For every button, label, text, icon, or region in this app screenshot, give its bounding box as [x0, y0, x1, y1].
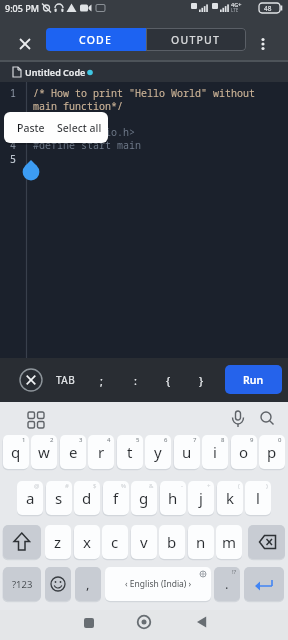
button[interactable]: Paste	[17, 112, 45, 143]
button[interactable]	[45, 567, 71, 601]
staticText: x	[83, 532, 91, 552]
button[interactable]	[79, 613, 99, 633]
button[interactable]	[134, 612, 154, 632]
button[interactable]: k	[217, 481, 243, 515]
staticText: 3	[79, 436, 83, 444]
button[interactable]	[226, 407, 250, 431]
button[interactable]: ‹ English (India) ›	[105, 567, 211, 601]
staticText: }	[199, 373, 204, 388]
button[interactable]: p	[259, 435, 285, 469]
staticText: l	[256, 488, 260, 508]
button[interactable]: OUTPUT	[146, 28, 246, 51]
staticText: w	[38, 442, 50, 462]
button[interactable]	[192, 612, 212, 632]
staticText: Paste	[17, 121, 45, 135]
staticText: r	[98, 442, 105, 462]
button[interactable]	[244, 567, 284, 601]
staticText: f	[113, 488, 119, 508]
staticText: $	[93, 482, 97, 490]
staticText: Untitled Code	[25, 66, 86, 78]
button[interactable]: a	[17, 481, 43, 515]
staticText: 9:05 PM	[5, 2, 39, 14]
staticText: #define start main	[33, 138, 141, 152]
staticText: b	[167, 532, 177, 552]
button[interactable]	[24, 408, 48, 432]
button[interactable]: g	[131, 481, 157, 515]
button[interactable]: x	[74, 525, 100, 559]
staticText: 5	[10, 152, 16, 166]
button[interactable]: ,	[75, 567, 101, 601]
staticText: p	[267, 442, 277, 462]
button[interactable]: :	[124, 368, 146, 392]
button[interactable]: e	[60, 435, 86, 469]
button[interactable]: f	[103, 481, 129, 515]
staticText: {	[166, 373, 171, 388]
staticText: 7	[193, 436, 197, 444]
button[interactable]: TAB	[50, 368, 82, 392]
staticText: LTE	[231, 7, 239, 13]
staticText: ;	[100, 373, 103, 388]
button[interactable]: r	[88, 435, 114, 469]
button[interactable]: y	[145, 435, 171, 469]
staticText: 4G+	[231, 1, 242, 8]
staticText: a	[26, 488, 35, 508]
button[interactable]: ;	[90, 368, 112, 392]
button[interactable]: u	[174, 435, 200, 469]
staticText: 0	[278, 436, 282, 444]
staticText: (	[238, 482, 240, 490]
staticText: -	[181, 482, 183, 490]
staticText: #	[65, 482, 69, 490]
button[interactable]: n	[188, 525, 214, 559]
staticText: )	[266, 482, 268, 490]
staticText: i	[213, 442, 217, 462]
button[interactable]: h	[160, 481, 186, 515]
button[interactable]	[3, 525, 41, 559]
button[interactable]: l	[245, 481, 271, 515]
button[interactable]: o	[231, 435, 257, 469]
staticText: 48	[264, 4, 272, 13]
staticText: 6	[164, 436, 168, 444]
staticText: 1	[10, 86, 16, 100]
button[interactable]: ?123	[3, 567, 41, 601]
staticText: 8	[221, 436, 225, 444]
button[interactable]: j	[188, 481, 214, 515]
button[interactable]	[14, 33, 36, 55]
button[interactable]: Select all	[57, 112, 102, 143]
staticText: 1	[22, 436, 26, 444]
staticText: z	[54, 532, 62, 552]
staticText: +	[207, 482, 211, 490]
button[interactable]	[255, 407, 279, 431]
button[interactable]: s	[46, 481, 72, 515]
button[interactable]: d	[74, 481, 100, 515]
staticText: @	[34, 482, 40, 490]
staticText: s	[55, 488, 63, 508]
button[interactable]: {	[157, 368, 179, 392]
button[interactable]	[18, 367, 44, 393]
staticText: Select all	[57, 121, 102, 135]
button[interactable]: t	[117, 435, 143, 469]
button[interactable]: q	[3, 435, 29, 469]
button[interactable]: Run	[225, 365, 282, 394]
staticText: n	[196, 532, 206, 552]
button[interactable]: b	[159, 525, 185, 559]
button[interactable]: }	[190, 368, 212, 392]
button[interactable]: z	[45, 525, 71, 559]
staticText: 4	[10, 138, 16, 152]
staticText: TAB	[56, 373, 76, 387]
staticText: g	[139, 488, 149, 508]
button[interactable]	[248, 525, 285, 559]
staticText: 5	[136, 436, 140, 444]
staticText: j	[199, 488, 203, 508]
button[interactable]	[252, 33, 274, 55]
button[interactable]: c	[102, 525, 128, 559]
button[interactable]: m	[216, 525, 242, 559]
staticText: /* How to print "Hello World" without	[33, 86, 255, 100]
button[interactable]: Untitled Code	[0, 62, 288, 82]
staticText: main function*/	[33, 99, 123, 113]
button[interactable]: CODE	[46, 28, 146, 51]
staticText: t	[127, 442, 133, 462]
button[interactable]: w	[31, 435, 57, 469]
button[interactable]: v	[131, 525, 157, 559]
button[interactable]: i	[202, 435, 228, 469]
button[interactable]: .	[214, 567, 240, 601]
